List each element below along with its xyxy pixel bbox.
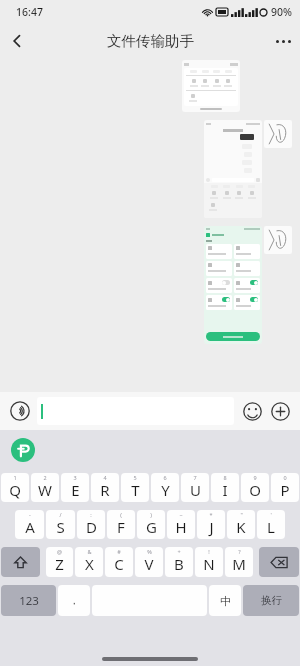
staticText: Q (9, 480, 21, 500)
button[interactable]: Screenshot image (204, 120, 262, 218)
staticText: O (249, 480, 261, 500)
staticText: ? (238, 548, 241, 555)
staticText: K (236, 517, 246, 537)
staticText: T (131, 480, 140, 500)
staticText: F (117, 517, 125, 537)
staticText: 文件传输助手 (107, 32, 194, 50)
button[interactable]: Sketch image (264, 120, 292, 148)
staticText: 5 (133, 474, 137, 481)
button[interactable]: Voice input (6, 397, 34, 425)
staticText: & (87, 548, 92, 555)
staticText: U (190, 480, 201, 500)
staticText: M (232, 554, 246, 574)
staticText: W (38, 480, 52, 500)
staticText: 中 (220, 594, 231, 608)
button[interactable]: 4 (91, 473, 119, 502)
button[interactable]: 中 (209, 585, 241, 616)
button[interactable]: 8 (211, 473, 239, 502)
staticText: 16:47 (16, 5, 43, 19)
button[interactable]: ' (257, 510, 285, 539)
staticText: H (175, 517, 187, 537)
staticText: E (71, 480, 80, 500)
button[interactable]: 2 (31, 473, 59, 502)
button[interactable]: Screenshot image (204, 226, 262, 344)
button[interactable]: ~ (167, 510, 195, 539)
button[interactable]: * (197, 510, 225, 539)
staticText: 4 (103, 474, 107, 481)
button[interactable]: Shift (1, 547, 40, 577)
staticText: ' (270, 511, 272, 518)
button[interactable]: ) (137, 510, 165, 539)
staticText: ) (150, 511, 152, 518)
button[interactable]: & (75, 547, 103, 577)
staticText: N (203, 554, 215, 574)
button[interactable]: Back (0, 24, 34, 58)
button[interactable]: More options (266, 24, 300, 58)
button[interactable]: # (105, 547, 133, 577)
button[interactable]: @ (46, 547, 73, 577)
button[interactable]: 7 (181, 473, 209, 502)
staticText: ! (208, 548, 210, 555)
staticText: I (222, 480, 228, 500)
staticText: D (86, 517, 97, 537)
staticText: % (147, 548, 152, 555)
staticText: 6 (163, 474, 167, 481)
staticText: " (240, 511, 243, 518)
button[interactable]: : (77, 510, 105, 539)
staticText: - (29, 511, 31, 518)
button[interactable]: " (227, 510, 255, 539)
staticText: X (85, 554, 94, 574)
button[interactable]: 3 (61, 473, 89, 502)
button[interactable]: % (135, 547, 163, 577)
button[interactable]: ， (58, 585, 90, 616)
button[interactable]: More functions (266, 397, 294, 425)
staticText: 123 (19, 593, 39, 609)
button[interactable]: ( (107, 510, 135, 539)
staticText: @ (57, 548, 62, 555)
staticText: + (177, 548, 181, 555)
button[interactable]: 0 (271, 473, 299, 502)
staticText: 0 (283, 474, 287, 481)
button[interactable]: Sketch image (264, 226, 292, 254)
button[interactable]: + (165, 547, 193, 577)
staticText: P (280, 480, 290, 500)
staticText: A (25, 517, 35, 537)
staticText: * (209, 511, 213, 518)
button[interactable]: Input method logo (10, 437, 36, 463)
staticText: 换行 (261, 594, 282, 607)
staticText: 2 (43, 474, 47, 481)
staticText: J (209, 517, 214, 537)
staticText: 3 (73, 474, 77, 481)
staticText: ， (69, 594, 79, 607)
staticText: Z (55, 554, 64, 574)
button[interactable]: / (46, 510, 75, 539)
staticText: 9 (253, 474, 257, 481)
staticText: 7 (193, 474, 197, 481)
button[interactable]: Emoji (238, 397, 266, 425)
button[interactable]: 5 (121, 473, 149, 502)
staticText: G (146, 517, 157, 537)
staticText: S (56, 517, 65, 537)
button[interactable] (37, 397, 234, 425)
staticText: ( (120, 511, 122, 518)
staticText: 1 (13, 474, 17, 481)
button[interactable]: Screenshot image (182, 60, 240, 112)
button[interactable]: 9 (241, 473, 269, 502)
staticText: Y (161, 480, 170, 500)
button[interactable]: 换行 (243, 585, 299, 616)
staticText: ~ (179, 511, 183, 518)
button[interactable]: ! (195, 547, 223, 577)
staticText: : (90, 511, 92, 518)
button[interactable]: ? (225, 547, 253, 577)
staticText: # (117, 548, 121, 555)
button[interactable]: 1 (1, 473, 29, 502)
button[interactable]: Backspace (259, 547, 299, 577)
staticText: 90% (271, 5, 292, 19)
button[interactable]: 6 (151, 473, 179, 502)
button[interactable]: 123 (1, 585, 56, 616)
staticText: R (100, 480, 110, 500)
staticText: B (174, 554, 184, 574)
staticText: 8 (223, 474, 227, 481)
button[interactable]: - (15, 510, 44, 539)
